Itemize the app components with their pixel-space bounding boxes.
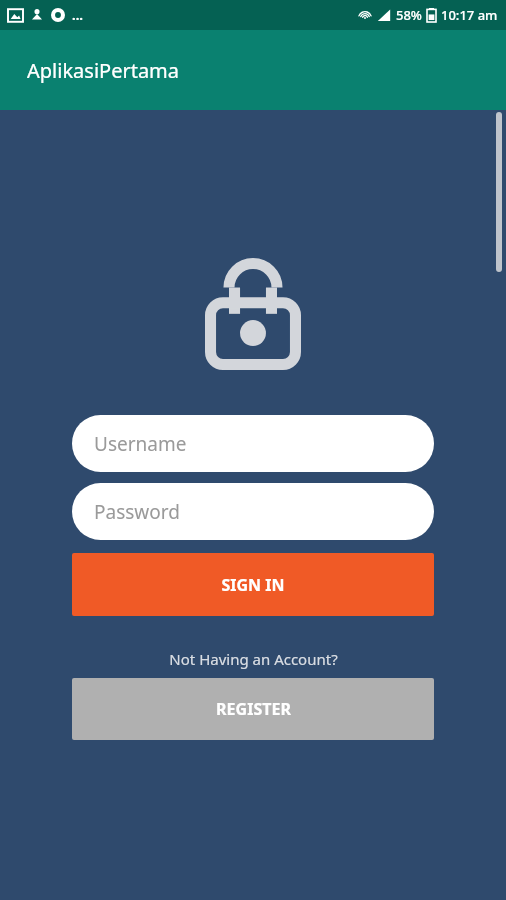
button[interactable]: Password	[72, 483, 434, 540]
staticText: AplikasiPertama	[27, 57, 180, 84]
button[interactable]: REGISTER	[72, 678, 434, 740]
staticText: 58%	[396, 6, 422, 24]
staticText: 10:17 am	[441, 6, 498, 24]
button[interactable]: SIGN IN	[72, 553, 434, 616]
staticText: ...	[72, 6, 83, 24]
other: Lock	[205, 258, 301, 370]
button[interactable]: Username	[72, 415, 434, 472]
staticText: Not Having an Account?	[169, 649, 338, 669]
staticText: Username	[94, 431, 187, 457]
staticText: REGISTER	[216, 698, 291, 720]
staticText: Password	[94, 499, 180, 525]
staticText: SIGN IN	[221, 574, 285, 596]
